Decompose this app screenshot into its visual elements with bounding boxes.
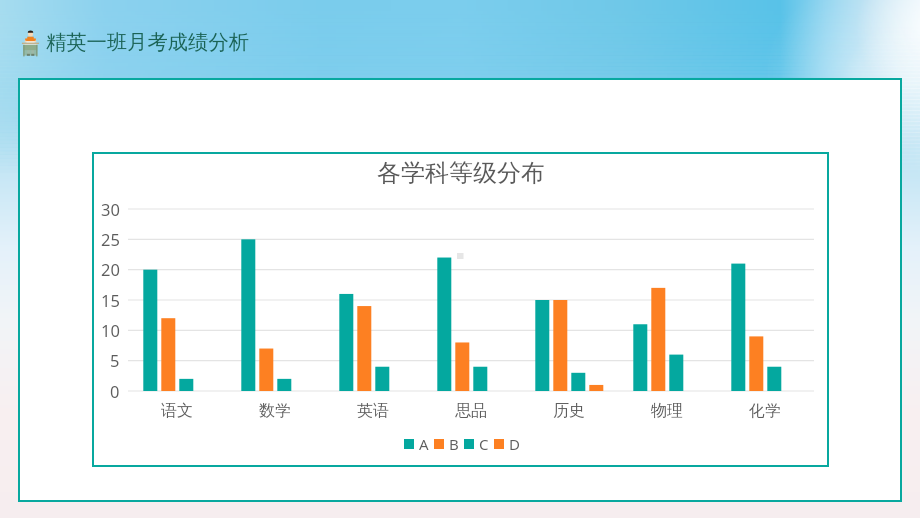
staticText: C: [479, 434, 489, 454]
staticText: 30: [101, 198, 120, 220]
staticText: 思品: [455, 401, 487, 421]
button[interactable]: 各学科等级分布柱状图: [92, 152, 829, 467]
staticText: 0: [110, 380, 120, 402]
staticText: B: [449, 434, 459, 454]
button[interactable]: 班级图标: [18, 24, 255, 57]
staticText: 15: [101, 289, 120, 311]
staticText: 25: [101, 228, 120, 250]
button[interactable]: B: [434, 434, 464, 454]
other: 班级图标: [21, 28, 40, 57]
staticText: 数学: [259, 401, 291, 421]
staticText: 精英一班月考成绩分析: [46, 29, 249, 55]
staticText: 语文: [161, 401, 193, 421]
staticText: A: [419, 434, 429, 454]
staticText: 5: [110, 349, 120, 371]
staticText: 历史: [553, 401, 585, 421]
button[interactable]: A: [404, 434, 434, 454]
staticText: 各学科等级分布: [377, 158, 545, 188]
staticText: 20: [101, 258, 120, 280]
button[interactable]: C: [464, 434, 494, 454]
staticText: 化学: [749, 401, 781, 421]
staticText: 物理: [651, 401, 683, 421]
staticText: D: [509, 434, 520, 454]
staticText: 10: [101, 319, 120, 341]
button[interactable]: D: [494, 434, 525, 454]
staticText: 英语: [357, 401, 389, 421]
